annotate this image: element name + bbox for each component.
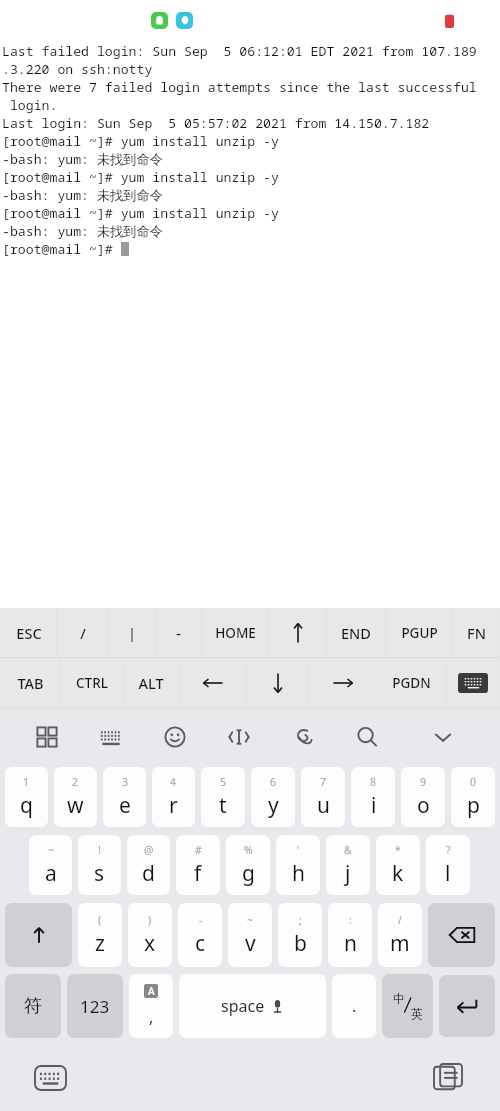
staticText: j: [345, 859, 351, 888]
staticText: -: [176, 623, 181, 643]
staticText: [root@mail ~]# yum install unzip -y: [2, 204, 279, 222]
button[interactable]: 中: [382, 974, 433, 1038]
other: Arrow down: [265, 670, 291, 696]
staticText: space: [221, 995, 265, 1017]
button[interactable]: Keyboard: [28, 1056, 72, 1100]
button[interactable]: Arrow up: [270, 608, 325, 657]
button[interactable]: 3: [103, 767, 146, 827]
button[interactable]: ): [128, 903, 172, 967]
button[interactable]: Enter: [439, 975, 495, 1037]
staticText: |: [128, 623, 136, 643]
other: Arrow right: [330, 670, 356, 696]
button[interactable]: Emoji: [143, 711, 207, 763]
button[interactable]: /: [58, 608, 107, 657]
staticText: h: [292, 859, 305, 888]
staticText: CTRL: [76, 674, 108, 692]
button[interactable]: /: [378, 903, 422, 967]
button[interactable]: ?: [426, 835, 470, 895]
button[interactable]: *: [376, 835, 420, 895]
staticText: %: [244, 843, 253, 857]
button[interactable]: Arrow left: [180, 658, 245, 707]
staticText: 1: [23, 775, 30, 789]
staticText: 5: [220, 775, 227, 789]
staticText: FN: [467, 623, 486, 643]
button[interactable]: 7: [301, 767, 345, 827]
staticText: d: [142, 859, 155, 888]
button[interactable]: PGUP: [387, 608, 452, 657]
staticText: 8: [370, 775, 377, 789]
staticText: a: [45, 859, 57, 888]
button[interactable]: 4: [152, 767, 195, 827]
button[interactable]: 0: [451, 767, 495, 827]
button[interactable]: ': [276, 835, 320, 895]
button[interactable]: PGDN: [377, 658, 445, 707]
button[interactable]: Arrow right: [310, 658, 375, 707]
button[interactable]: 1: [5, 767, 48, 827]
button[interactable]: Shift: [5, 903, 72, 967]
button[interactable]: .: [332, 974, 376, 1038]
button[interactable]: ALT: [124, 658, 178, 707]
staticText: y: [268, 791, 279, 820]
staticText: 符: [24, 995, 42, 1018]
other: Arrow up: [285, 620, 311, 646]
button[interactable]: #: [176, 835, 220, 895]
button[interactable]: TAB: [1, 658, 59, 707]
button[interactable]: CTRL: [61, 658, 122, 707]
button[interactable]: Arrow down: [247, 658, 308, 707]
button[interactable]: Clipboard: [271, 711, 335, 763]
staticText: z: [95, 929, 105, 958]
staticText: k: [392, 859, 404, 888]
button[interactable]: Text cursor: [207, 711, 271, 763]
button[interactable]: Clipboard history: [426, 1056, 470, 1100]
button[interactable]: Hide keyboard: [399, 711, 486, 763]
staticText: u: [317, 791, 330, 820]
staticText: /: [398, 913, 402, 927]
other: Hide keyboard: [458, 673, 488, 693]
button[interactable]: @: [127, 835, 170, 895]
button[interactable]: Backspace: [428, 903, 495, 967]
button[interactable]: %: [226, 835, 270, 895]
staticText: 2: [72, 775, 79, 789]
button[interactable]: &: [326, 835, 370, 895]
button[interactable]: -: [156, 608, 201, 657]
button[interactable]: 符: [5, 974, 61, 1038]
button[interactable]: space: [179, 974, 326, 1038]
button[interactable]: HOME: [203, 608, 268, 657]
button[interactable]: 8: [351, 767, 395, 827]
staticText: 123: [80, 995, 110, 1018]
button[interactable]: 2: [54, 767, 97, 827]
button[interactable]: ;: [278, 903, 322, 967]
staticText: q: [20, 791, 33, 820]
staticText: ~: [48, 843, 55, 857]
button[interactable]: Grid: [14, 711, 79, 763]
button[interactable]: 123: [67, 974, 123, 1038]
button[interactable]: ~: [29, 835, 72, 895]
staticText: Last login: Sun Sep 5 05:57:02 2021 from…: [2, 114, 430, 132]
button[interactable]: (: [78, 903, 122, 967]
staticText: 中: [393, 991, 405, 1006]
staticText: PGDN: [392, 674, 431, 692]
staticText: 6: [270, 775, 277, 789]
button[interactable]: :: [328, 903, 372, 967]
staticText: w: [67, 791, 84, 820]
staticText: -bash: yum: 未找到命令: [2, 222, 163, 240]
button[interactable]: 5: [201, 767, 245, 827]
button[interactable]: ESC: [1, 608, 56, 657]
button[interactable]: Hide keyboard: [447, 658, 499, 707]
button[interactable]: !: [78, 835, 121, 895]
staticText: -bash: yum: 未找到命令: [2, 186, 163, 204]
button[interactable]: Keyboard layouts: [79, 711, 143, 763]
button[interactable]: 6: [251, 767, 295, 827]
staticText: .3.220 on ssh:notty: [2, 60, 153, 78]
button[interactable]: |: [109, 608, 154, 657]
button[interactable]: END: [327, 608, 385, 657]
staticText: HOME: [215, 624, 256, 642]
button[interactable]: Search: [335, 711, 399, 763]
button[interactable]: -: [178, 903, 222, 967]
staticText: ,: [149, 1006, 154, 1028]
button[interactable]: FN: [454, 608, 499, 657]
staticText: login.: [2, 96, 58, 114]
button[interactable]: 9: [401, 767, 445, 827]
button[interactable]: ~: [228, 903, 272, 967]
button[interactable]: A: [129, 974, 173, 1038]
